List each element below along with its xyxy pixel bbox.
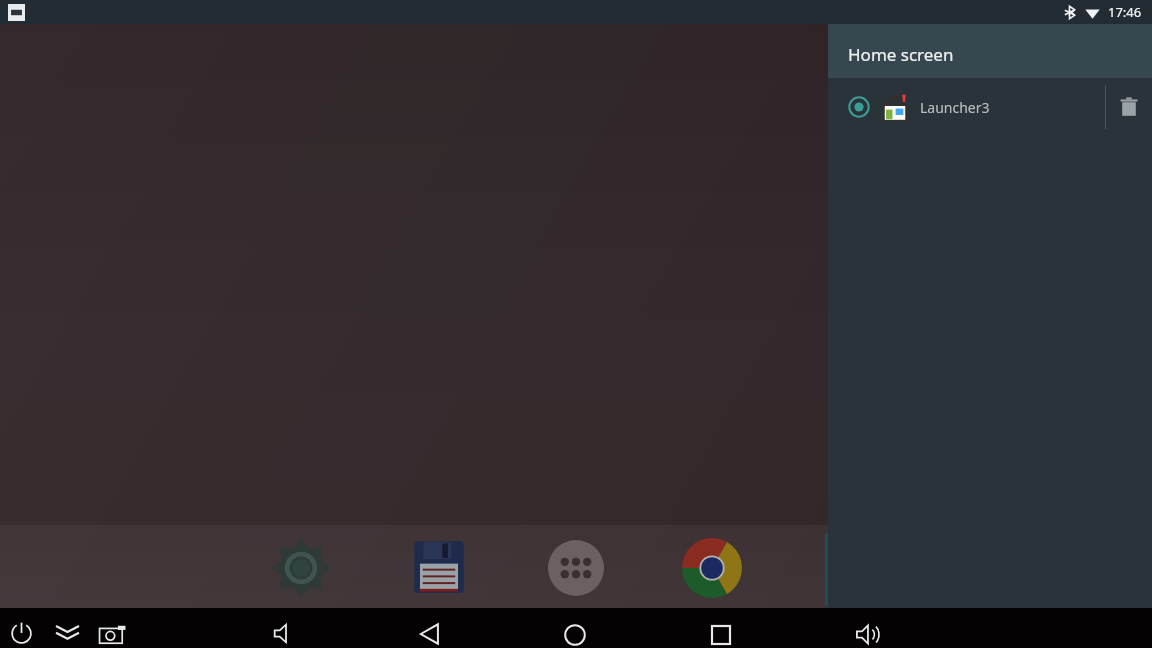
button[interactable]: Collapse bbox=[55, 625, 80, 641]
button[interactable]: Power bbox=[10, 622, 33, 645]
button[interactable]: Delete bbox=[1106, 78, 1152, 136]
other: Select Launcher3 bbox=[848, 96, 870, 118]
other: Screenshot notification bbox=[8, 4, 25, 21]
button[interactable]: Back bbox=[419, 623, 441, 645]
button[interactable]: Select Launcher3 bbox=[828, 78, 1152, 136]
button[interactable]: Screenshot bbox=[99, 625, 126, 644]
button[interactable]: Volume down bbox=[273, 623, 294, 644]
staticText: Home screen bbox=[848, 43, 954, 66]
button[interactable]: Recents bbox=[711, 625, 731, 645]
staticText: 17:46 bbox=[1108, 3, 1142, 21]
button[interactable]: Home bbox=[564, 624, 586, 646]
button[interactable]: Volume up bbox=[856, 623, 879, 646]
staticText: Launcher3 bbox=[920, 98, 990, 117]
